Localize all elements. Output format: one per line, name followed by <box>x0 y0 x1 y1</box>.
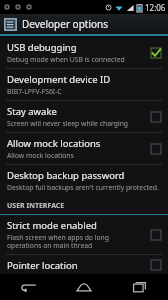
staticText: Pointer location <box>7 259 78 270</box>
button[interactable]: Back <box>0 274 56 300</box>
button[interactable]: Home <box>56 274 112 300</box>
staticText: Strict mode enabled <box>7 219 97 232</box>
staticText: Desktop backup password <box>7 169 125 182</box>
staticText: Developer options <box>22 17 109 31</box>
button[interactable]: Unchecked <box>149 228 162 241</box>
button[interactable]: Pointer location <box>0 255 168 274</box>
staticText: Stay awake <box>7 105 57 118</box>
button[interactable]: Unchecked <box>149 110 162 123</box>
staticText: USER INTERFACE <box>7 201 65 211</box>
button[interactable]: Desktop backup password <box>0 165 168 196</box>
staticText: Allow mock locations <box>7 151 74 160</box>
button[interactable]: Strict mode enabled <box>0 215 168 254</box>
button[interactable]: Developer options <box>0 14 168 34</box>
button[interactable]: Stay awake <box>0 101 168 132</box>
staticText: Desktop full backups aren't currently pr… <box>7 183 159 192</box>
button[interactable]: Unchecked <box>149 259 162 270</box>
staticText: USB debugging <box>7 41 77 54</box>
staticText: Flash screen when apps do long operation… <box>7 233 145 250</box>
staticText: BIB7-LPFV-FS6I-C <box>7 87 62 96</box>
other: Developer options <box>4 18 17 31</box>
button[interactable]: Unchecked <box>149 142 162 155</box>
staticText: Development device ID <box>7 73 111 86</box>
button[interactable]: Recent apps <box>112 274 168 300</box>
button[interactable]: Development device ID <box>0 69 168 100</box>
button[interactable]: USB debugging <box>0 37 168 68</box>
button[interactable]: Allow mock locations <box>0 133 168 164</box>
staticText: 12:06 <box>145 2 166 13</box>
staticText: Allow mock locations <box>7 137 101 150</box>
button[interactable]: Checked <box>149 46 162 59</box>
staticText: Debug mode when USB is connected <box>7 55 125 64</box>
staticText: Screen will never sleep while charging <box>7 119 129 128</box>
